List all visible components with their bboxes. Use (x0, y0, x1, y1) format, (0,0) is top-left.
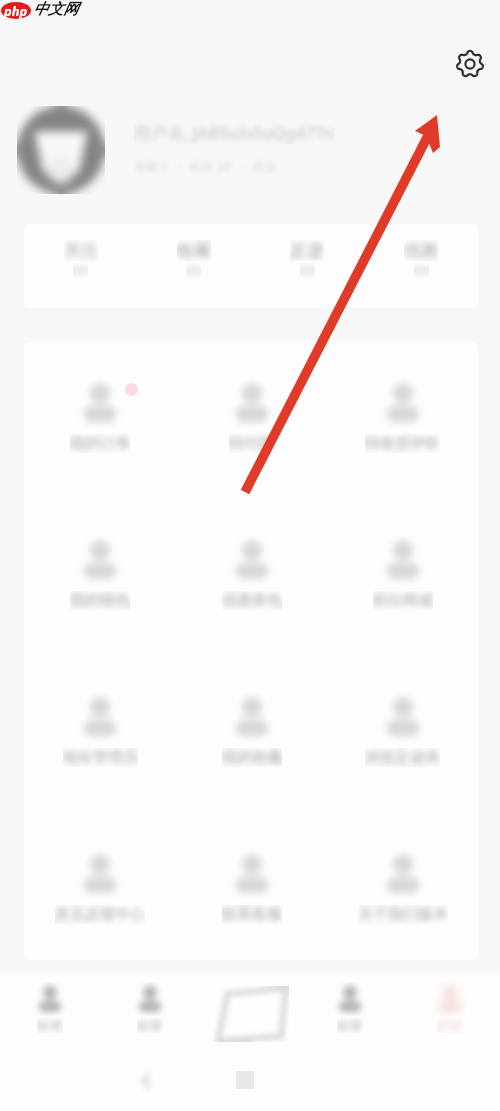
staticText: 中文网 (33, 0, 78, 19)
staticText: 00 (414, 261, 429, 279)
button[interactable]: 足迹 (250, 224, 364, 308)
staticText: 联系客服 (222, 905, 282, 924)
button[interactable]: 优惠券包 (176, 535, 327, 692)
staticText: 等级 1 · 积分 20 · 关注 (134, 158, 277, 174)
staticText: 用户名_JAB5uIvIuQg47Tn (134, 121, 335, 144)
staticText: 我的订单 (70, 434, 130, 453)
button[interactable]: Category (100, 974, 200, 1054)
staticText: 关于我们版本 (358, 905, 448, 924)
button[interactable]: 积分商城 (327, 535, 478, 692)
button[interactable]: Scan (200, 974, 300, 1054)
button[interactable]: 地址管理员 (24, 692, 176, 849)
button[interactable]: Avatar (17, 106, 105, 194)
button[interactable]: 我的收藏 (176, 692, 327, 849)
button[interactable]: 待付款 (176, 378, 327, 535)
staticText: 优惠券包 (222, 591, 282, 610)
button[interactable]: 关注 (24, 224, 137, 308)
staticText: 意见反馈中心 (55, 905, 145, 924)
button[interactable]: Profile (400, 974, 500, 1054)
staticText: 标签 (337, 1017, 363, 1033)
staticText: 关注 (64, 240, 98, 261)
button[interactable]: 我的订单 (24, 378, 176, 535)
staticText: 优惠 (404, 240, 438, 261)
button[interactable]: 关于我们版本 (327, 849, 478, 960)
staticText: 浏览足迹表 (365, 748, 440, 767)
staticText: 待付款 (229, 434, 274, 453)
staticText: 我的收藏 (222, 748, 282, 767)
staticText: 标签 (137, 1017, 163, 1033)
staticText: 地址管理员 (63, 748, 138, 767)
staticText: 我的钱包 (70, 591, 130, 610)
button[interactable]: Cart (300, 974, 400, 1054)
staticText: 00 (73, 261, 88, 279)
staticText: 收藏 (177, 240, 211, 261)
staticText: 积分商城 (373, 591, 433, 610)
staticText: 足迹 (290, 240, 324, 261)
button[interactable]: 联系客服 (176, 849, 327, 960)
staticText: 标签 (437, 1017, 463, 1033)
button[interactable]: 意见反馈中心 (24, 849, 176, 960)
button[interactable]: Back (134, 1070, 156, 1092)
button[interactable]: 用户名_JAB5uIvIuQg47Tn (134, 121, 335, 174)
staticText: 待收货评价 (365, 434, 440, 453)
button[interactable]: 待收货评价 (327, 378, 478, 535)
staticText: 00 (300, 261, 315, 279)
button[interactable]: Settings (452, 46, 488, 82)
staticText: 00 (186, 261, 201, 279)
button[interactable]: 优惠 (364, 224, 478, 308)
button[interactable]: 浏览足迹表 (327, 692, 478, 849)
staticText: 标签 (37, 1017, 63, 1033)
button[interactable]: Home (0, 974, 100, 1054)
button[interactable]: 收藏 (137, 224, 250, 308)
button[interactable]: 我的钱包 (24, 535, 176, 692)
staticText: php (4, 2, 28, 20)
